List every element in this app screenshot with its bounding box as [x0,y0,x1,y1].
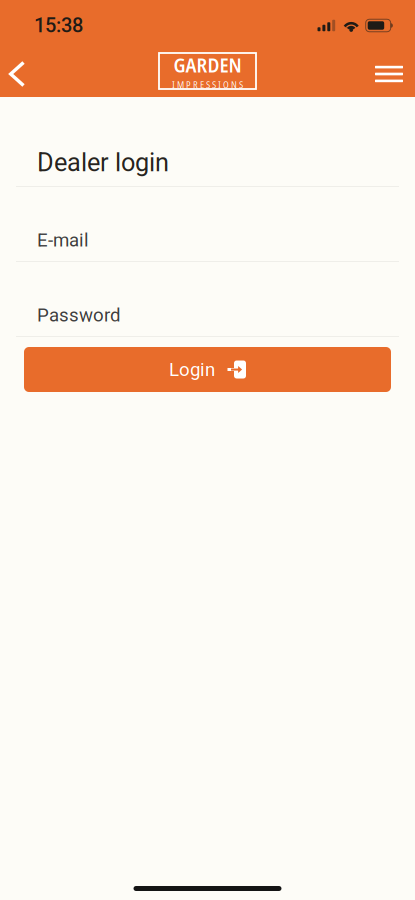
button[interactable]: Back [0,45,34,97]
staticText: Login [169,359,215,380]
button[interactable]: Password [0,262,415,337]
staticText: I M P R E S S I O N S [172,78,243,91]
staticText: Password [37,304,121,326]
staticText: GARDEN [173,51,241,78]
button[interactable]: Menu [369,45,409,97]
staticText: Dealer login [37,148,169,177]
staticText: E-mail [37,229,89,251]
staticText: 15:38 [34,14,83,37]
button[interactable]: E-mail [0,187,415,262]
button[interactable]: Login [24,347,391,392]
